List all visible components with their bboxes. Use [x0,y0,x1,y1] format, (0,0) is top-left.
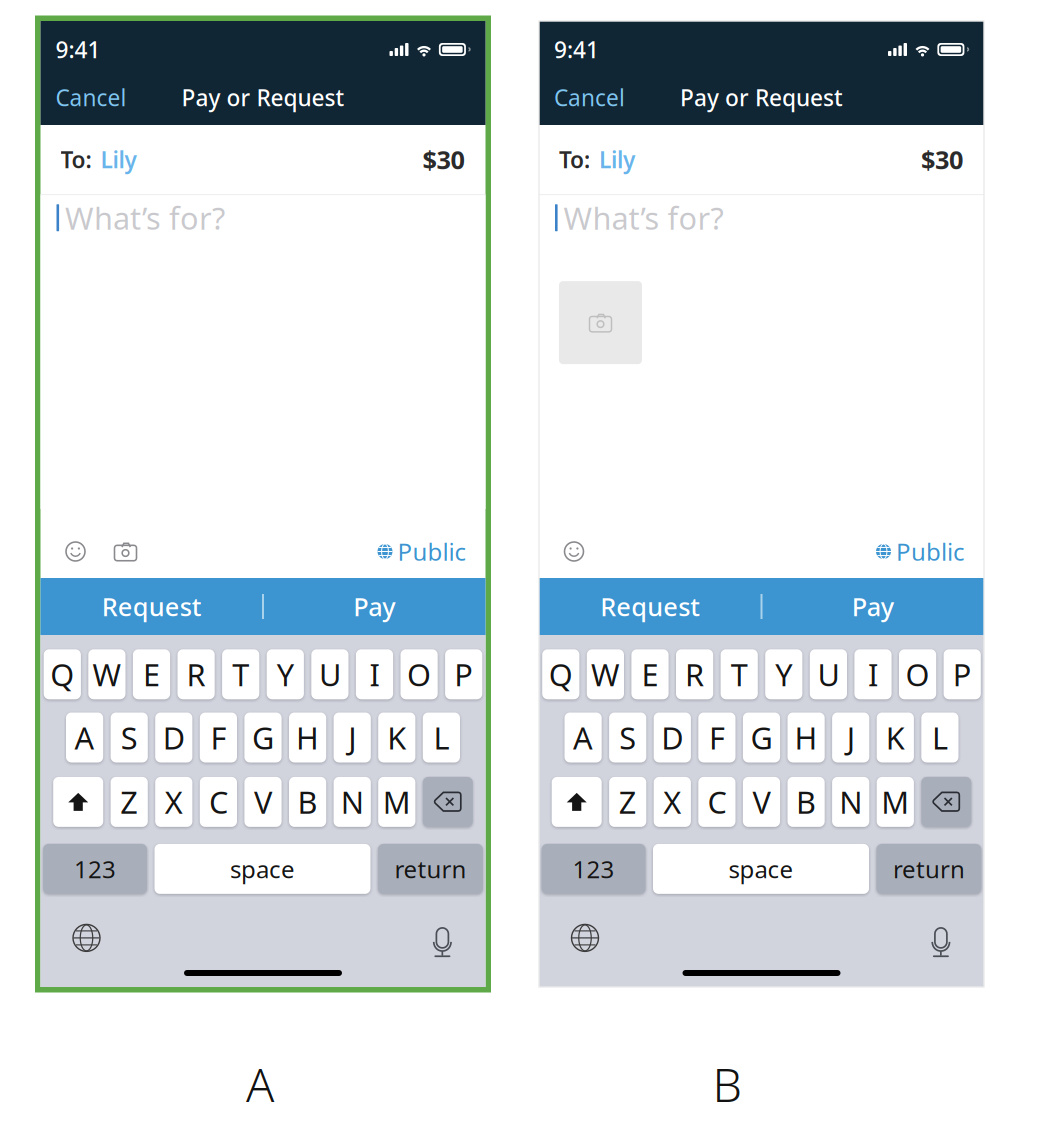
button[interactable]: Dictate [418,919,464,957]
staticText: C [209,781,228,822]
staticText: P [454,654,473,695]
button[interactable]: Switch keyboard [63,919,109,957]
button[interactable]: 123 [43,844,147,894]
staticText: S [619,717,636,758]
staticText: D [163,717,185,758]
button[interactable]: N [832,777,869,827]
button[interactable]: P [944,649,981,699]
staticText: C [707,781,726,822]
button[interactable]: R [177,649,215,699]
staticText: I [868,654,878,695]
button[interactable]: B [787,777,825,827]
button[interactable]: K [378,712,415,762]
staticText: T [232,654,249,695]
staticText: L [932,717,948,758]
button[interactable]: Q [44,649,81,699]
button[interactable]: Switch keyboard [562,919,608,957]
button[interactable]: M [378,777,415,827]
button[interactable]: W [587,649,624,699]
button[interactable]: L [921,712,958,762]
button[interactable]: return [876,844,981,894]
button[interactable]: M [877,777,914,827]
button[interactable]: Y [267,649,304,699]
button[interactable]: C [698,777,735,827]
staticText: Z [619,781,637,822]
button[interactable]: L [423,712,460,762]
button[interactable]: I [356,649,393,699]
staticText: H [296,717,319,758]
button[interactable]: Cancel [539,74,640,120]
button[interactable]: S [609,712,646,762]
staticText: Pay [852,590,894,623]
staticText: F [210,717,226,758]
button[interactable]: P [445,649,482,699]
button[interactable]: Cancel [40,74,141,120]
staticText: M [383,781,411,822]
button[interactable]: return [378,844,483,894]
button[interactable]: K [877,712,914,762]
button[interactable]: E [631,649,669,699]
button[interactable]: V [244,777,282,827]
staticText: U [817,654,839,695]
button[interactable]: X [155,777,192,827]
staticText: G [252,717,274,758]
button[interactable]: Pay [263,578,485,635]
button[interactable]: G [244,712,282,762]
button[interactable]: R [676,649,713,699]
button[interactable]: S [111,712,148,762]
button[interactable]: V [743,777,780,827]
button[interactable]: Request [539,578,761,635]
button[interactable]: 123 [542,844,646,894]
button[interactable]: C [200,777,237,827]
button[interactable]: space [653,844,869,894]
staticText: G [750,717,772,758]
button[interactable]: O [899,649,936,699]
button[interactable]: U [810,649,847,699]
button[interactable]: A [564,712,602,762]
button[interactable]: A [66,712,103,762]
button[interactable]: I [854,649,892,699]
button[interactable]: Camera [108,501,142,586]
staticText: 123 [74,853,116,885]
button[interactable]: T [222,649,259,699]
button[interactable]: F [200,712,237,762]
staticText: J [847,717,855,758]
button[interactable]: W [88,649,125,699]
button[interactable]: U [311,649,348,699]
button[interactable]: Shift [53,777,103,827]
staticText: Q [50,654,74,695]
staticText: A [75,717,95,758]
button[interactable]: E [133,649,170,699]
button[interactable]: Z [111,777,148,827]
button[interactable]: Shift [552,777,602,827]
button[interactable]: Delete [921,777,971,827]
button[interactable]: J [832,712,869,762]
button[interactable]: J [334,712,371,762]
button[interactable]: O [400,649,438,699]
button[interactable]: N [334,777,371,827]
button[interactable]: Request [40,578,263,635]
button[interactable]: Delete [423,777,473,827]
button[interactable]: Pay [761,578,984,635]
button[interactable]: space [154,844,370,894]
button[interactable]: Dictate [917,919,963,957]
staticText: R [187,654,206,695]
button[interactable]: Z [609,777,646,827]
button[interactable]: Y [765,649,802,699]
button[interactable]: Q [542,649,579,699]
button[interactable]: B [289,777,326,827]
button[interactable]: H [787,712,825,762]
button[interactable]: H [289,712,326,762]
button[interactable]: Emoji [60,501,90,586]
button[interactable]: G [743,712,780,762]
button[interactable]: D [654,712,691,762]
button[interactable]: D [155,712,192,762]
button[interactable]: Emoji [559,501,589,586]
button[interactable]: T [721,649,758,699]
button[interactable]: X [654,777,691,827]
staticText: N [341,781,364,822]
button[interactable]: Public [377,501,466,586]
button[interactable]: F [698,712,735,762]
staticText: I [369,654,379,695]
button[interactable]: Public [876,501,965,586]
